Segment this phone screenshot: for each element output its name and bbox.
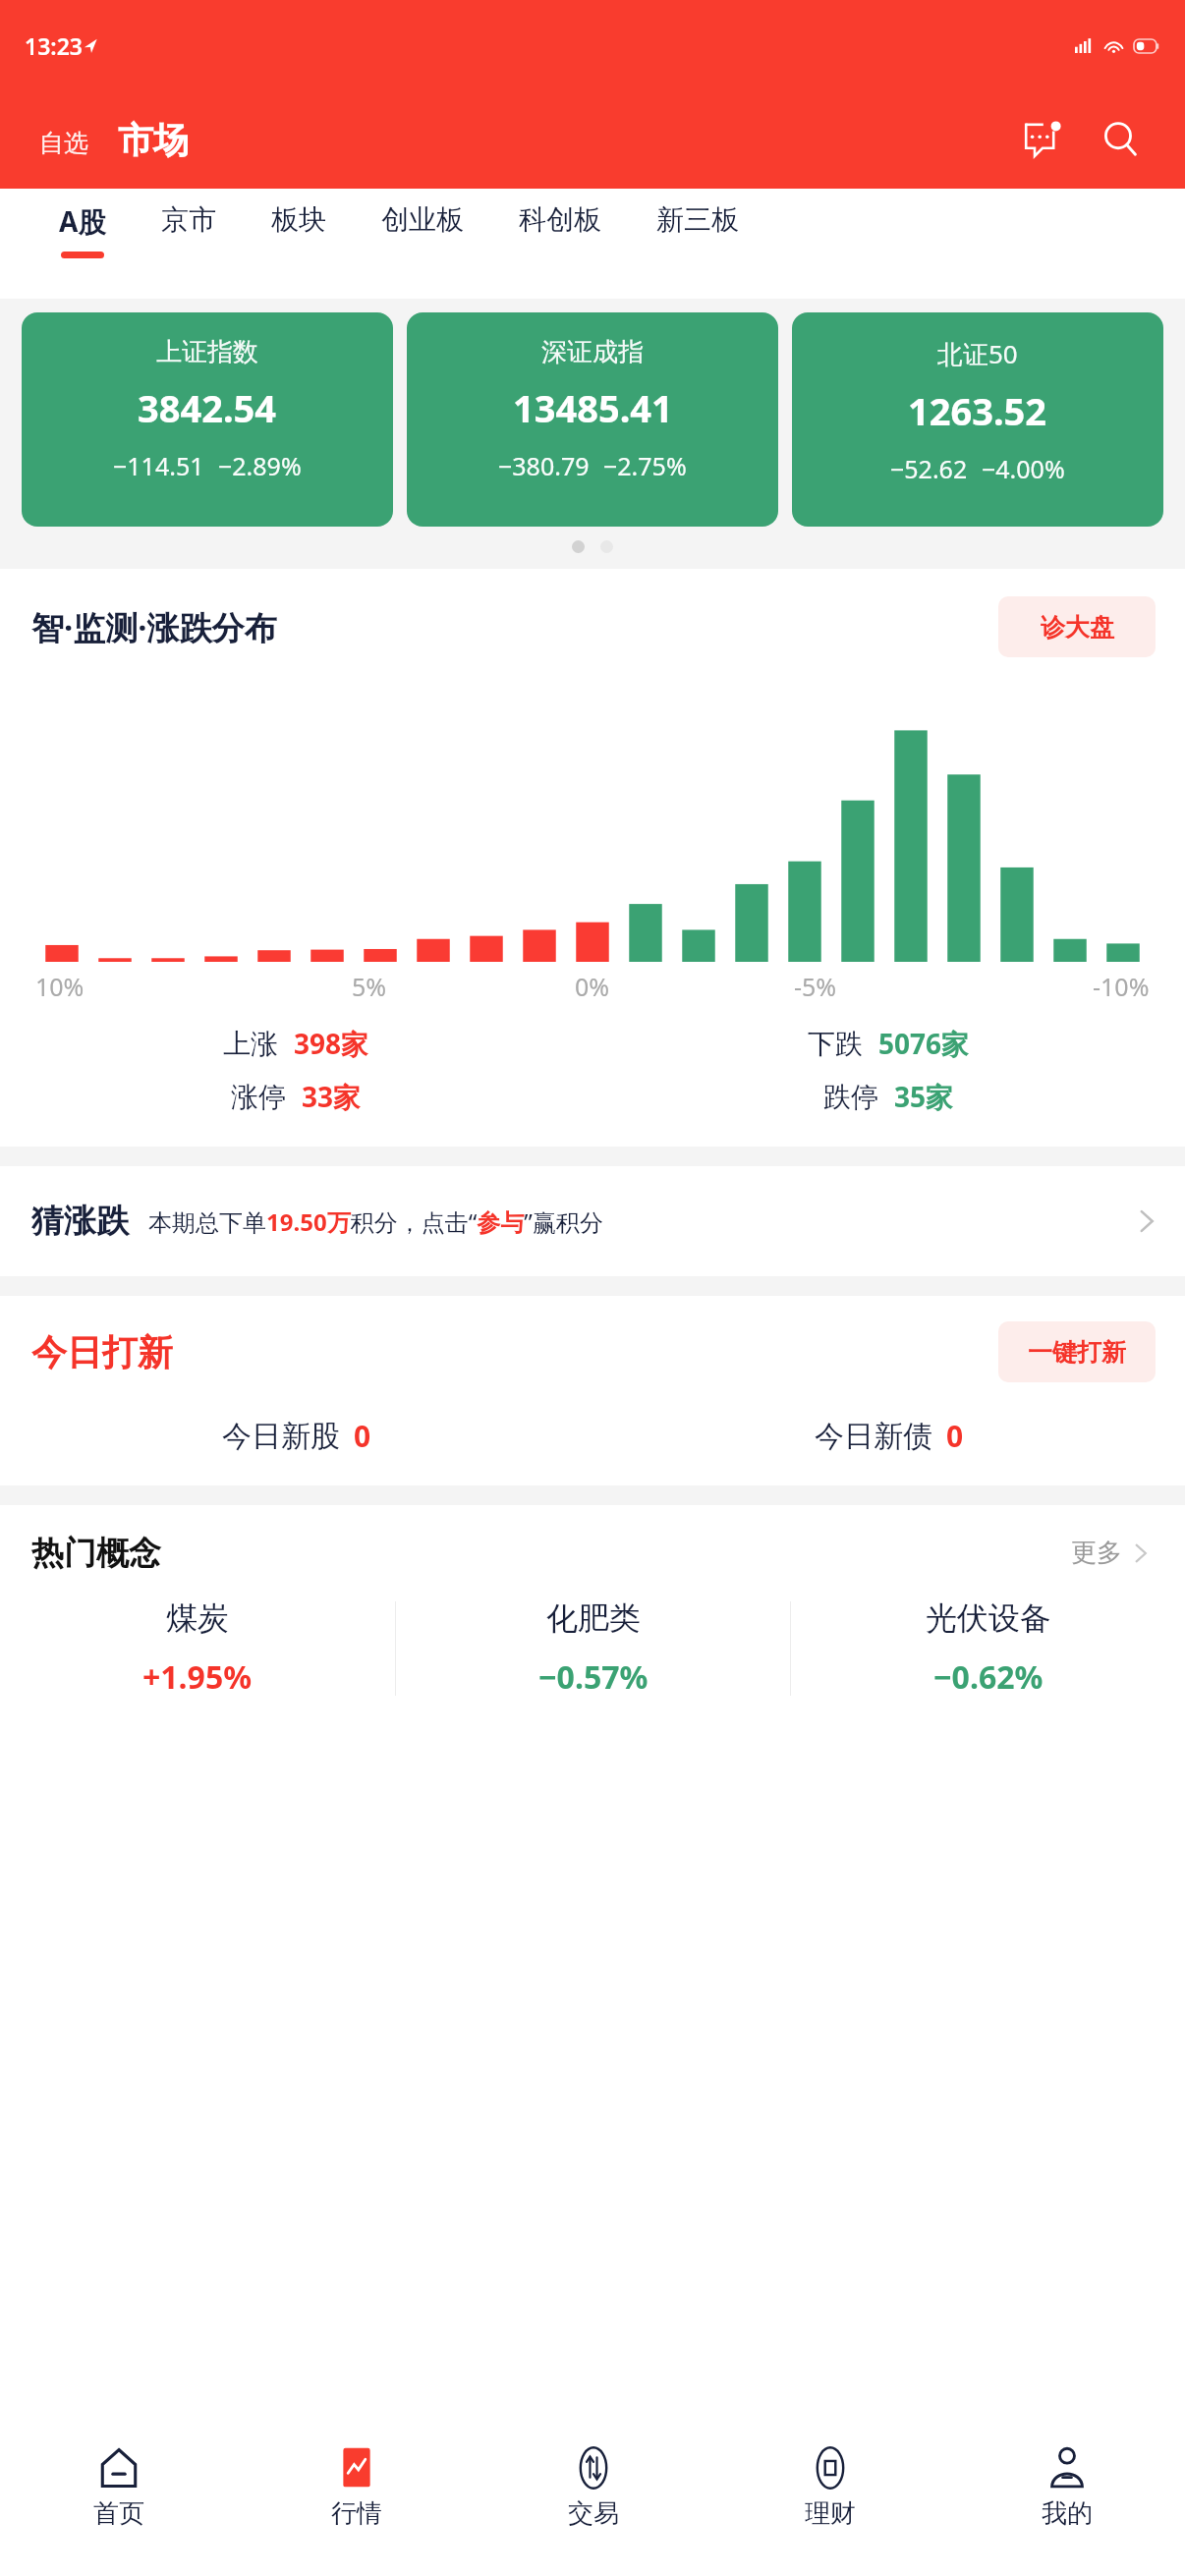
staticText: 热门概念 bbox=[31, 1533, 161, 1574]
staticText: 0 bbox=[946, 1416, 964, 1456]
button[interactable]: 今日新股 bbox=[0, 1416, 592, 1456]
button[interactable]: Search bbox=[1091, 109, 1152, 170]
button[interactable]: 市场 bbox=[116, 118, 191, 162]
staticText: 理财 bbox=[805, 2497, 856, 2530]
staticText: 13:23 bbox=[25, 30, 83, 61]
staticText: 光伏设备 bbox=[926, 1598, 1051, 1638]
button[interactable]: A股 bbox=[31, 202, 134, 258]
button[interactable]: 科创板 bbox=[491, 202, 629, 249]
button[interactable]: 诊大盘 bbox=[998, 596, 1156, 657]
staticText: 0 bbox=[354, 1416, 371, 1456]
staticText: 3842.54 bbox=[138, 382, 277, 433]
staticText: −0.62% bbox=[933, 1655, 1044, 1699]
button[interactable]: 煤炭 bbox=[0, 1575, 395, 1722]
button[interactable]: 化肥类 bbox=[396, 1575, 790, 1722]
staticText: 深证成指 bbox=[541, 336, 644, 368]
staticText: 1263.52 bbox=[908, 385, 1047, 436]
staticText: 跌停 bbox=[823, 1080, 878, 1114]
staticText: -10% bbox=[1093, 970, 1150, 1003]
button[interactable]: 一键打新 bbox=[998, 1321, 1156, 1382]
button[interactable]: 理财 bbox=[711, 2442, 948, 2534]
staticText: 北证50 bbox=[937, 336, 1018, 371]
button[interactable]: 首页 bbox=[0, 2442, 238, 2534]
staticText: 5076家 bbox=[878, 1025, 970, 1062]
staticText: 5% bbox=[352, 970, 387, 1003]
staticText: −52.62 bbox=[890, 452, 968, 485]
button[interactable]: Messages bbox=[1012, 109, 1073, 170]
button[interactable]: 板块 bbox=[244, 202, 354, 249]
button[interactable]: 猜涨跌 bbox=[0, 1166, 1185, 1276]
button[interactable]: 我的 bbox=[948, 2442, 1185, 2534]
staticText: 10% bbox=[35, 970, 85, 1003]
staticText: -5% bbox=[794, 970, 837, 1003]
staticText: 35家 bbox=[894, 1078, 954, 1115]
staticText: 诊大盘 bbox=[1041, 612, 1114, 643]
button[interactable]: 行情 bbox=[238, 2442, 475, 2534]
button[interactable]: 北证50 bbox=[792, 312, 1163, 527]
staticText: −380.79 bbox=[498, 449, 590, 482]
staticText: 市场 bbox=[118, 118, 189, 162]
button[interactable]: 深证成指 bbox=[407, 312, 778, 527]
staticText: 上涨 bbox=[223, 1027, 278, 1061]
staticText: 今日新股 bbox=[222, 1418, 340, 1455]
staticText: 13485.41 bbox=[513, 382, 673, 433]
staticText: A股 bbox=[59, 202, 106, 240]
button[interactable]: 更多 bbox=[1065, 1531, 1157, 1575]
staticText: 智·监测·涨跌分布 bbox=[31, 605, 277, 649]
staticText: 上证指数 bbox=[156, 336, 258, 368]
button[interactable]: 京市 bbox=[134, 202, 244, 249]
staticText: 今日新债 bbox=[815, 1418, 932, 1455]
staticText: 化肥类 bbox=[546, 1598, 641, 1638]
staticText: 猜涨跌 bbox=[31, 1201, 129, 1242]
staticText: 本期总下单19.50万积分，点击“参与”赢积分 bbox=[148, 1205, 603, 1238]
staticText: 创业板 bbox=[381, 202, 464, 237]
staticText: 一键打新 bbox=[1028, 1337, 1126, 1368]
staticText: 涨停 bbox=[231, 1080, 286, 1114]
staticText: 板块 bbox=[271, 202, 326, 237]
button[interactable]: 自选 bbox=[37, 124, 90, 162]
button[interactable]: 新三板 bbox=[629, 202, 766, 249]
staticText: −4.00% bbox=[982, 452, 1065, 485]
staticText: −2.75% bbox=[603, 449, 687, 482]
button[interactable]: 上证指数 bbox=[22, 312, 393, 527]
button[interactable]: 今日新债 bbox=[592, 1416, 1185, 1456]
staticText: 煤炭 bbox=[166, 1598, 229, 1638]
staticText: 398家 bbox=[294, 1025, 369, 1062]
staticText: +1.95% bbox=[142, 1655, 253, 1699]
staticText: 今日打新 bbox=[31, 1330, 173, 1374]
staticText: 交易 bbox=[568, 2497, 619, 2530]
staticText: 行情 bbox=[331, 2497, 382, 2530]
staticText: 科创板 bbox=[519, 202, 601, 237]
staticText: −2.89% bbox=[218, 449, 302, 482]
staticText: 首页 bbox=[93, 2497, 144, 2530]
staticText: −0.57% bbox=[538, 1655, 649, 1699]
staticText: −114.51 bbox=[113, 449, 204, 482]
button[interactable]: 光伏设备 bbox=[791, 1575, 1185, 1722]
button[interactable]: 创业板 bbox=[354, 202, 491, 249]
staticText: 新三板 bbox=[656, 202, 739, 237]
staticText: 0% bbox=[575, 970, 610, 1003]
staticText: 33家 bbox=[302, 1078, 362, 1115]
staticText: 自选 bbox=[39, 128, 88, 158]
staticText: 我的 bbox=[1042, 2497, 1093, 2530]
staticText: 下跌 bbox=[808, 1027, 863, 1061]
staticText: 京市 bbox=[161, 202, 216, 237]
staticText: 更多 bbox=[1071, 1537, 1122, 1569]
button[interactable]: 交易 bbox=[475, 2442, 711, 2534]
